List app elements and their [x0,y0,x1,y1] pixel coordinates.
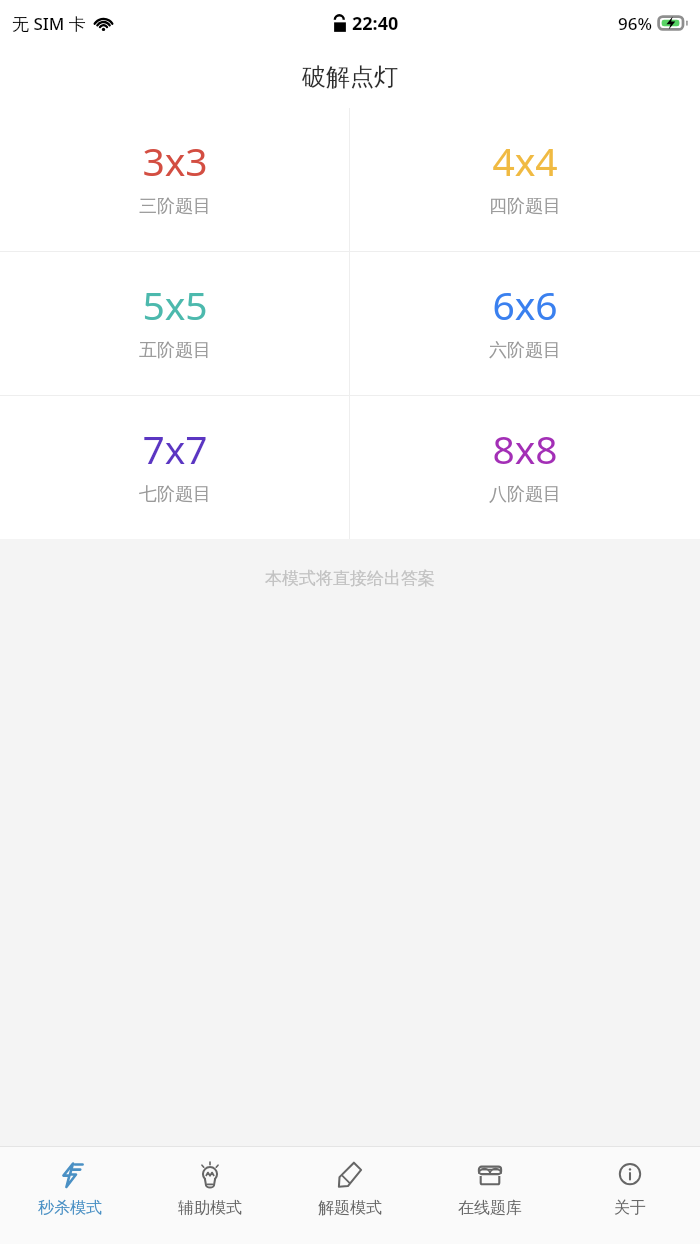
staticText: 5x5 [142,278,208,331]
staticText: 秒杀模式 [38,1198,102,1218]
staticText: 六阶题目 [489,339,561,362]
staticText: 4x4 [492,134,558,187]
staticText: 3x3 [142,134,208,187]
staticText: 无 SIM 卡 [12,12,86,35]
button[interactable]: 3x3 [0,108,349,251]
staticText: 四阶题目 [489,195,561,218]
other: 在线题库 [473,1158,507,1192]
other: 关于 [613,1158,647,1192]
staticText: 五阶题目 [139,339,211,362]
staticText: 22:40 [352,11,399,36]
staticText: 7x7 [142,422,208,475]
button[interactable]: 秒杀模式 [0,1158,140,1244]
button[interactable]: 关于 [560,1158,700,1244]
staticText: 三阶题目 [139,195,211,218]
button[interactable]: 6x6 [350,252,700,395]
button[interactable]: 8x8 [350,396,700,539]
button[interactable]: 5x5 [0,252,349,395]
staticText: 七阶题目 [139,483,211,506]
button[interactable]: 解题模式 [280,1158,420,1244]
button[interactable]: 7x7 [0,396,349,539]
staticText: 本模式将直接给出答案 [265,568,435,589]
button[interactable]: 辅助模式 [140,1158,280,1244]
button[interactable]: 在线题库 [420,1158,560,1244]
other: 解题模式 [333,1158,367,1192]
button[interactable]: 4x4 [350,108,700,251]
staticText: 解题模式 [318,1198,382,1218]
staticText: 辅助模式 [178,1198,242,1218]
other: 秒杀模式 [53,1158,87,1192]
staticText: 破解点灯 [302,62,398,92]
staticText: 在线题库 [458,1198,522,1218]
staticText: 6x6 [492,278,558,331]
staticText: 8x8 [492,422,558,475]
staticText: 96% [618,12,652,35]
other: 辅助模式 [193,1158,227,1192]
staticText: 八阶题目 [489,483,561,506]
staticText: 关于 [614,1198,646,1218]
